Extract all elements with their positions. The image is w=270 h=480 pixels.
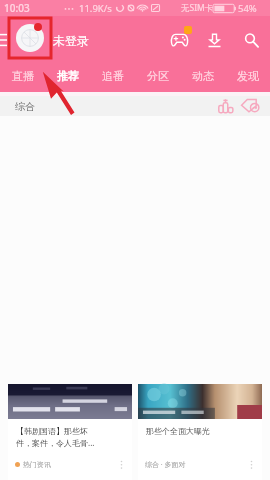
button[interactable]: More options	[246, 459, 257, 470]
button[interactable]: Search	[237, 23, 265, 57]
button[interactable]: Ranking	[214, 95, 236, 117]
staticText: 54%	[238, 2, 257, 15]
button[interactable]: 发现	[225, 64, 270, 92]
button[interactable]: 直播	[0, 64, 45, 92]
button[interactable]: Category	[239, 94, 262, 117]
staticText: 追番	[102, 69, 124, 83]
button[interactable]: 【韩剧国语】那些坏 件，案件，令人毛骨...	[8, 384, 132, 480]
button[interactable]: 追番	[90, 64, 135, 92]
staticText: 综合	[15, 100, 35, 113]
staticText: 动态	[192, 69, 214, 83]
staticText: 无SIM卡	[181, 2, 214, 14]
staticText: 综合 · 多面对	[145, 460, 186, 470]
staticText: 那些个全面大曝光	[146, 426, 210, 436]
button[interactable]: 动态	[180, 64, 225, 92]
button[interactable]: 分区	[135, 64, 180, 92]
staticText: 10:03	[4, 1, 30, 15]
button[interactable]: More options	[116, 459, 127, 470]
button[interactable]: Profile	[9, 18, 51, 58]
staticText: 分区	[147, 69, 169, 83]
button[interactable]: Download	[200, 23, 228, 57]
staticText: 未登录	[53, 33, 89, 48]
button[interactable]: Menu	[0, 25, 7, 55]
staticText: 直播	[12, 69, 34, 83]
button[interactable]: Games	[165, 23, 194, 57]
staticText: 【韩剧国语】那些坏 件，案件，令人毛骨...	[16, 426, 95, 448]
button[interactable]: 那些个全面大曝光	[138, 384, 262, 480]
staticText: 11.9K/s	[79, 2, 112, 15]
staticText: 发现	[237, 69, 259, 83]
staticText: 热门资讯	[23, 460, 51, 469]
button[interactable]: 推荐	[45, 64, 90, 92]
staticText: 推荐	[57, 69, 79, 83]
